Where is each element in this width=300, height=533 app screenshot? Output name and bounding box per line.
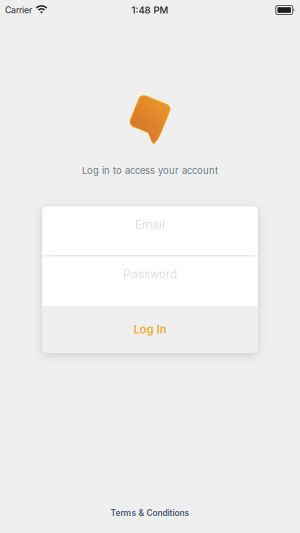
staticText: Password: [123, 267, 177, 281]
staticText: Terms & Conditions: [110, 508, 189, 518]
staticText: Log in to access your account: [82, 165, 218, 176]
button[interactable]: Log In: [42, 306, 258, 353]
button[interactable]: Password: [42, 257, 258, 306]
staticText: Log In: [133, 323, 166, 336]
staticText: Carrier: [5, 5, 32, 15]
button[interactable]: Terms & Conditions: [96, 501, 203, 525]
button[interactable]: Email: [42, 206, 258, 255]
staticText: 1:48 PM: [131, 4, 168, 16]
staticText: Email: [135, 217, 165, 232]
